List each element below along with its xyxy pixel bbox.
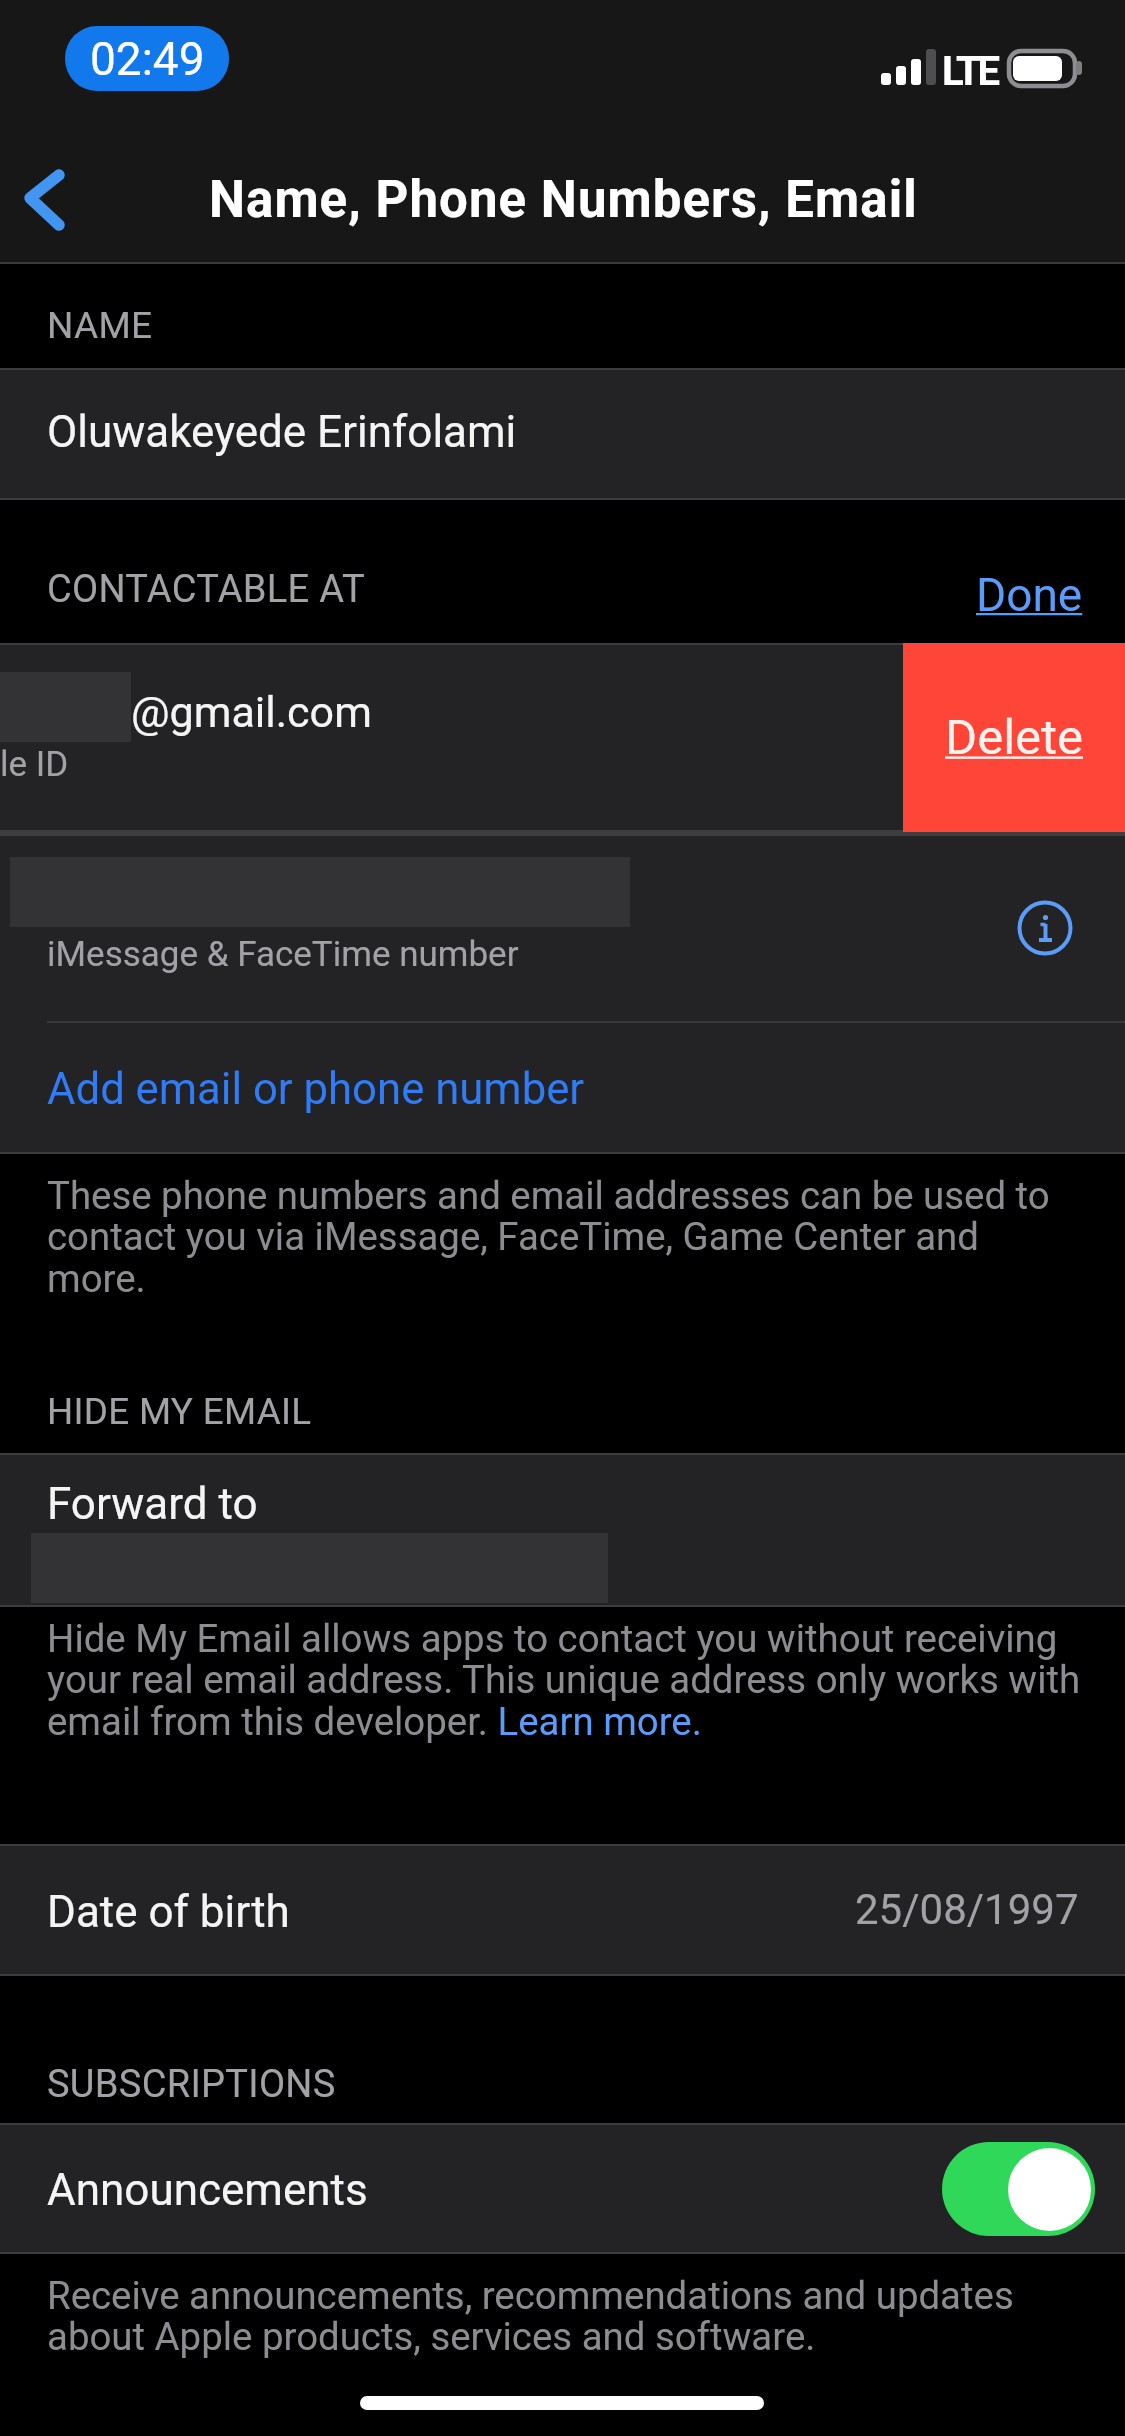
staticText: Add email or phone number xyxy=(47,1063,585,1114)
staticText: Delete xyxy=(945,709,1084,766)
button[interactable] xyxy=(0,1453,1125,1607)
button[interactable]: Add email or phone number xyxy=(0,1023,1125,1154)
button[interactable] xyxy=(0,643,903,832)
button[interactable]: Back xyxy=(4,152,94,247)
staticText: 02:49 xyxy=(90,32,205,86)
staticText: CONTACTABLE AT xyxy=(47,567,365,612)
staticText: LTE xyxy=(942,48,997,95)
staticText: Name, Phone Numbers, Email xyxy=(209,170,918,230)
staticText: NAME xyxy=(47,304,153,347)
staticText: le ID xyxy=(0,744,69,785)
staticText: iMessage & FaceTime number xyxy=(47,934,519,975)
staticText: Date of birth xyxy=(47,1886,290,1938)
staticText: Announcements xyxy=(47,2164,368,2216)
staticText: Forward to xyxy=(47,1478,258,1530)
button[interactable]: Done xyxy=(956,561,1098,629)
staticText: Receive announcements, recommendations a… xyxy=(47,2273,1077,2360)
staticText: @gmail.com xyxy=(131,687,372,737)
staticText: Oluwakeyede Erinfolami xyxy=(47,406,517,458)
staticText: Done xyxy=(976,568,1083,622)
button[interactable]: Delete xyxy=(903,643,1125,832)
staticText: These phone numbers and email addresses … xyxy=(47,1173,1057,1302)
staticText: 25/08/1997 xyxy=(855,1885,1079,1934)
staticText: Hide My Email allows apps to contact you… xyxy=(47,1616,1085,1745)
staticText: HIDE MY EMAIL xyxy=(47,1390,312,1433)
button[interactable] xyxy=(0,1844,1125,1976)
button[interactable]: More info xyxy=(1006,889,1084,967)
button[interactable]: Announcements toggle xyxy=(942,2142,1095,2236)
staticText: SUBSCRIPTIONS xyxy=(47,2062,336,2107)
button[interactable]: Oluwakeyede Erinfolami xyxy=(0,368,1125,500)
